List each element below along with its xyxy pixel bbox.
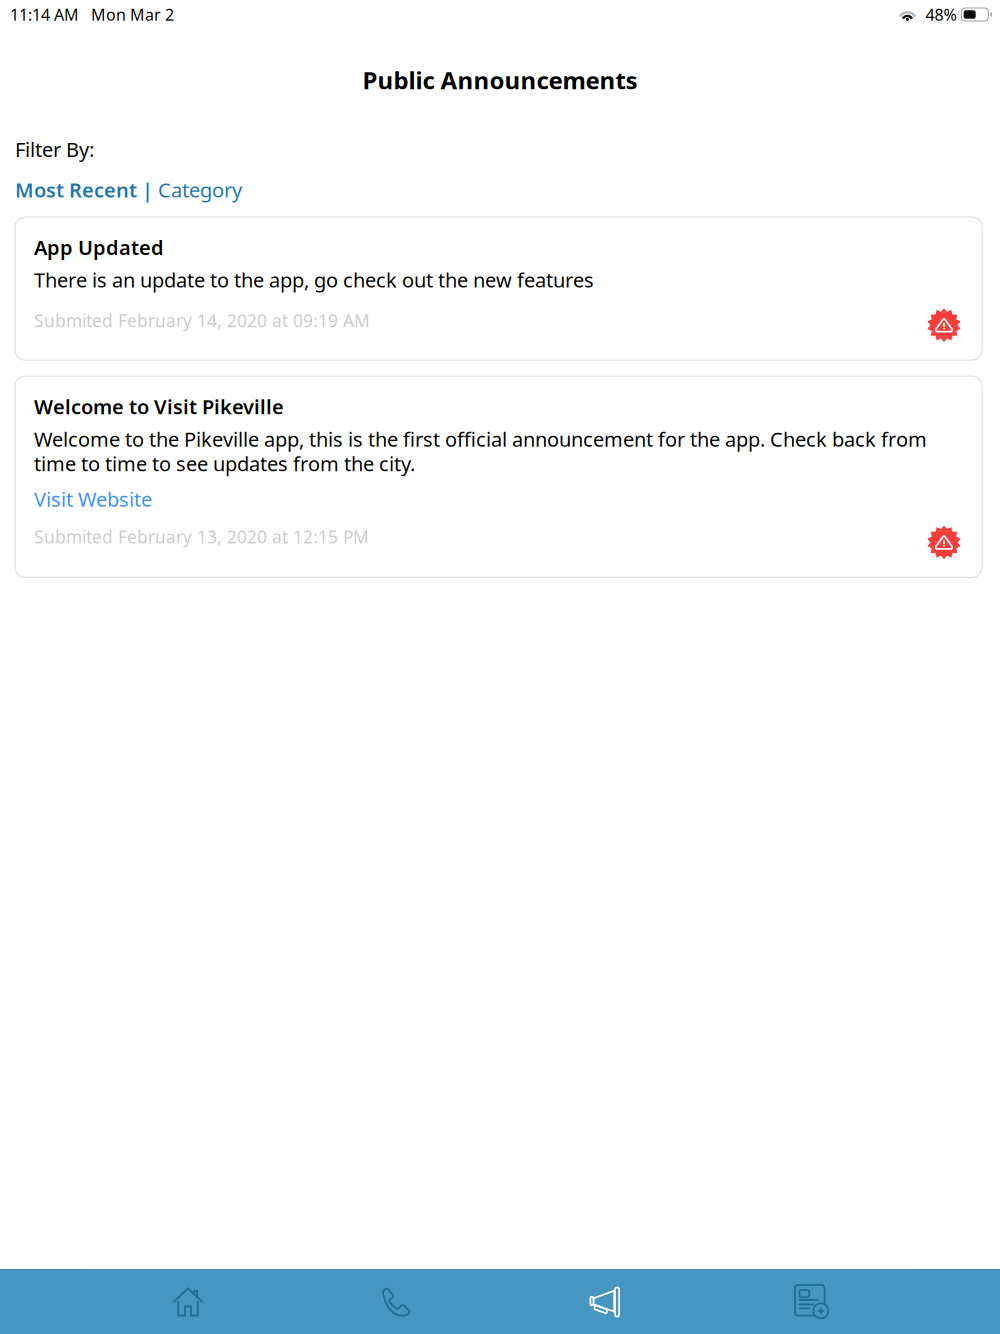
button[interactable]: Category: [158, 176, 242, 203]
button[interactable]: Welcome to Visit Pikeville: [15, 376, 982, 577]
button[interactable]: Announcements: [500, 1269, 708, 1334]
button[interactable]: Most Recent: [15, 176, 137, 203]
staticText: Welcome to the Pikeville app, this is th…: [34, 426, 927, 477]
staticText: Submited February 13, 2020 at 12:15 PM: [34, 525, 369, 548]
staticText: Welcome to Visit Pikeville: [34, 393, 284, 420]
staticText: There is an update to the app, go check …: [34, 267, 594, 293]
staticText: Public Announcements: [362, 64, 637, 96]
staticText: Category: [158, 176, 242, 203]
staticText: Mon Mar 2: [91, 4, 174, 25]
staticText: App Updated: [34, 234, 164, 261]
staticText: Submited February 14, 2020 at 09:19 AM: [34, 309, 370, 332]
staticText: Most Recent: [15, 176, 137, 203]
button[interactable]: Submit News: [708, 1269, 916, 1334]
staticText: Filter By:: [15, 136, 94, 162]
button[interactable]: Home: [84, 1269, 292, 1334]
staticText: 48%: [925, 4, 956, 25]
staticText: |: [137, 176, 158, 203]
staticText: 11:14 AM: [10, 4, 79, 25]
button[interactable]: Call: [292, 1269, 500, 1334]
button[interactable]: App Updated: [15, 217, 982, 360]
staticText: Visit Website: [34, 486, 152, 512]
